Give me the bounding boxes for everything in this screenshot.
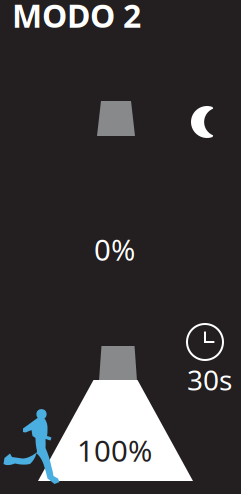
button[interactable]: Timer [187,324,223,360]
staticText: 100% [77,431,152,470]
button[interactable]: Night mode [191,105,223,139]
staticText: MODO 2 [12,0,141,36]
button[interactable]: Lamp off [97,101,135,136]
staticText: 0% [94,230,135,269]
staticText: 30s [187,361,232,398]
